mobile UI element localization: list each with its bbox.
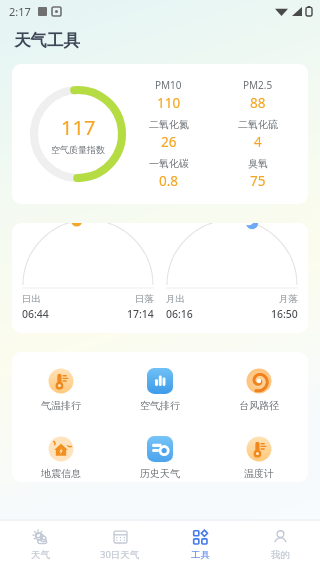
- staticText: 地震信息: [41, 467, 81, 480]
- staticText: 我的: [271, 549, 290, 561]
- staticText: 26: [161, 133, 177, 151]
- button[interactable]: 气温排行: [12, 366, 110, 414]
- staticText: 88: [250, 94, 266, 112]
- staticText: 月出: [166, 293, 185, 305]
- staticText: 17:14: [127, 307, 154, 321]
- staticText: PM10: [155, 78, 182, 92]
- button[interactable]: 台风路径: [209, 366, 308, 414]
- staticText: 月落: [279, 293, 298, 305]
- staticText: 二氧化氮: [149, 118, 189, 131]
- staticText: 历史天气: [140, 467, 180, 480]
- button[interactable]: 空气排行: [110, 366, 209, 414]
- staticText: 30日天气: [100, 548, 140, 561]
- staticText: 空气质量指数: [51, 144, 105, 155]
- staticText: 4: [254, 133, 262, 151]
- button[interactable]: 30日天气: [80, 521, 160, 568]
- staticText: 日落: [135, 293, 154, 305]
- staticText: 16:50: [271, 307, 298, 321]
- staticText: 06:44: [22, 307, 49, 321]
- staticText: 日出: [22, 293, 41, 305]
- button[interactable]: 温度计: [209, 434, 308, 482]
- staticText: 110: [157, 94, 181, 112]
- staticText: 天气工具: [14, 30, 80, 51]
- staticText: 工具: [191, 549, 210, 561]
- staticText: 75: [250, 172, 266, 190]
- staticText: PM2.5: [243, 78, 273, 92]
- staticText: 一氧化碳: [149, 157, 189, 170]
- button[interactable]: 地震信息: [12, 434, 110, 482]
- button[interactable]: 天气: [0, 521, 80, 568]
- button[interactable]: 历史天气: [110, 434, 209, 482]
- staticText: 06:16: [166, 307, 193, 321]
- staticText: 空气排行: [140, 399, 180, 412]
- button[interactable]: 我的: [240, 521, 320, 568]
- staticText: 气温排行: [41, 399, 81, 412]
- staticText: 二氧化硫: [238, 118, 278, 131]
- staticText: 天气: [31, 549, 50, 561]
- staticText: 台风路径: [239, 399, 279, 412]
- staticText: 臭氧: [248, 157, 268, 170]
- button[interactable]: 工具: [160, 521, 240, 568]
- staticText: 2:17: [9, 4, 31, 19]
- staticText: 117: [61, 114, 96, 141]
- staticText: 温度计: [244, 467, 274, 480]
- staticText: 0.8: [159, 172, 179, 190]
